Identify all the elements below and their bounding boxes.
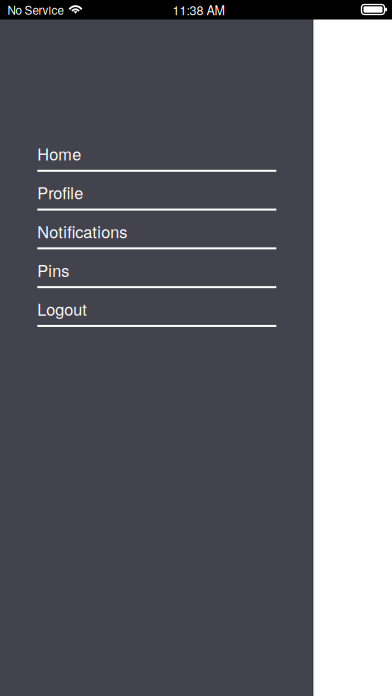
staticText: Logout bbox=[37, 297, 87, 320]
button[interactable]: Pins bbox=[37, 249, 276, 288]
button[interactable]: Notifications bbox=[37, 210, 276, 249]
staticText: Home bbox=[37, 142, 81, 165]
button[interactable]: Logout bbox=[37, 288, 276, 326]
staticText: Notifications bbox=[37, 219, 127, 243]
button[interactable]: Home bbox=[37, 132, 276, 171]
staticText: Profile bbox=[37, 181, 83, 204]
button[interactable]: Profile bbox=[37, 171, 276, 210]
staticText: No Service bbox=[7, 1, 63, 18]
staticText: Pins bbox=[37, 258, 69, 282]
staticText: 11:38 AM bbox=[172, 1, 224, 19]
